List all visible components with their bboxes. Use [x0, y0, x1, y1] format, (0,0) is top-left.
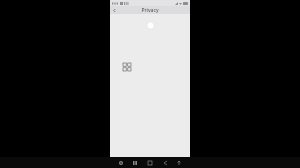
button[interactable]: Up	[175, 159, 183, 167]
button[interactable]: Home	[146, 159, 154, 167]
button[interactable]: Apps	[121, 61, 132, 72]
staticText: Privacy	[141, 7, 159, 14]
button[interactable]: Back	[161, 159, 169, 167]
button[interactable]: Recents	[131, 159, 139, 167]
button[interactable]: Assistant	[117, 159, 125, 167]
button[interactable]: Back	[111, 7, 118, 14]
